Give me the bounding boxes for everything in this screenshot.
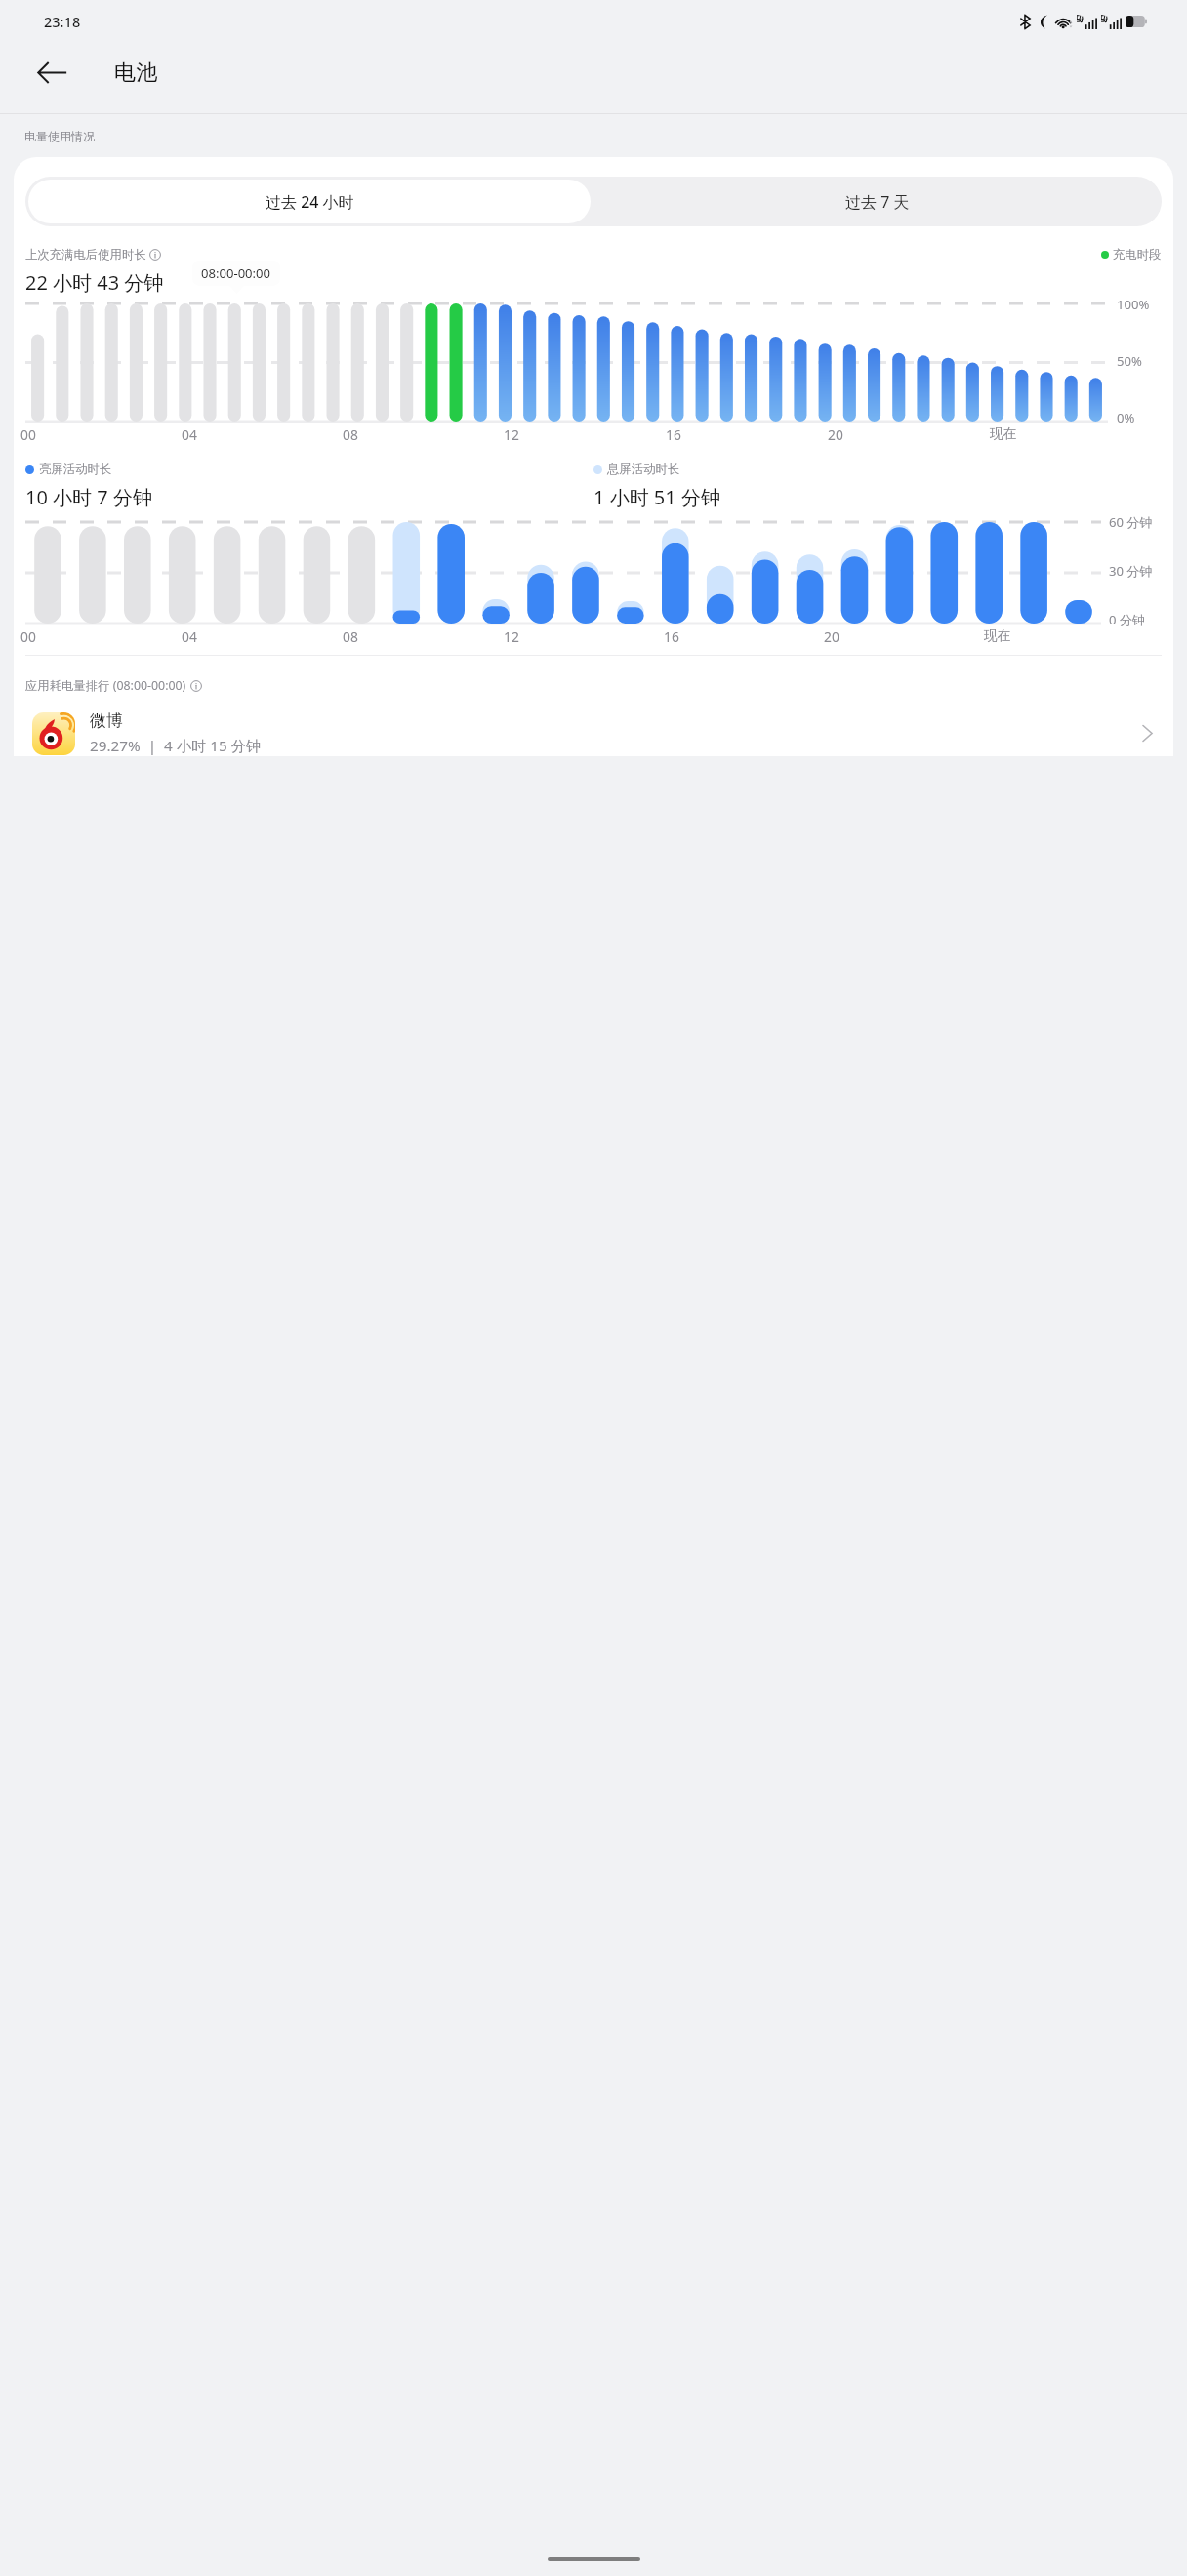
staticText: 16	[664, 627, 679, 646]
staticText: 1 小时 51 分钟	[593, 484, 720, 510]
staticText: 上次充满电后使用时长	[25, 247, 146, 262]
staticText: 08:00-00:00	[201, 264, 271, 282]
staticText: 电池	[114, 60, 158, 87]
button[interactable]: 微博	[14, 710, 1173, 756]
staticText: 00	[20, 425, 36, 444]
staticText: 100%	[1117, 296, 1150, 313]
staticText: 00	[20, 627, 36, 646]
staticText: 电量使用情况	[24, 129, 95, 143]
staticText: 0%	[1117, 409, 1135, 426]
staticText: 20	[824, 627, 839, 646]
staticText: 亮屏活动时长	[39, 462, 112, 477]
staticText: 过去 7 天	[845, 191, 910, 213]
staticText: 08	[343, 425, 358, 444]
staticText: 应用耗电量排行 (08:00-00:00)	[25, 677, 186, 694]
staticText: 60 分钟	[1109, 513, 1153, 531]
staticText: 23:18	[44, 12, 81, 31]
staticText: 过去 24 小时	[266, 191, 354, 213]
staticText: 04	[182, 627, 197, 646]
staticText: 10 小时 7 分钟	[25, 484, 152, 510]
staticText: 04	[182, 425, 197, 444]
staticText: 16	[666, 425, 681, 444]
button[interactable]: 过去 24 小时	[28, 180, 591, 223]
button[interactable]: 过去 7 天	[593, 177, 1162, 226]
staticText: 30 分钟	[1109, 562, 1153, 580]
staticText: 08	[343, 627, 358, 646]
staticText: 29.27% | 4 小时 15 分钟	[90, 736, 262, 756]
staticText: 0 分钟	[1109, 611, 1146, 628]
staticText: 现在	[990, 425, 1017, 442]
staticText: 12	[504, 425, 519, 444]
staticText: 充电时段	[1113, 247, 1162, 262]
staticText: 息屏活动时长	[607, 462, 680, 477]
staticText: 20	[828, 425, 843, 444]
button[interactable]: Back	[34, 56, 68, 90]
staticText: 50%	[1117, 352, 1142, 370]
staticText: 微博	[90, 710, 123, 731]
staticText: 12	[504, 627, 519, 646]
staticText: 现在	[984, 627, 1011, 644]
staticText: 22 小时 43 分钟	[25, 269, 164, 296]
